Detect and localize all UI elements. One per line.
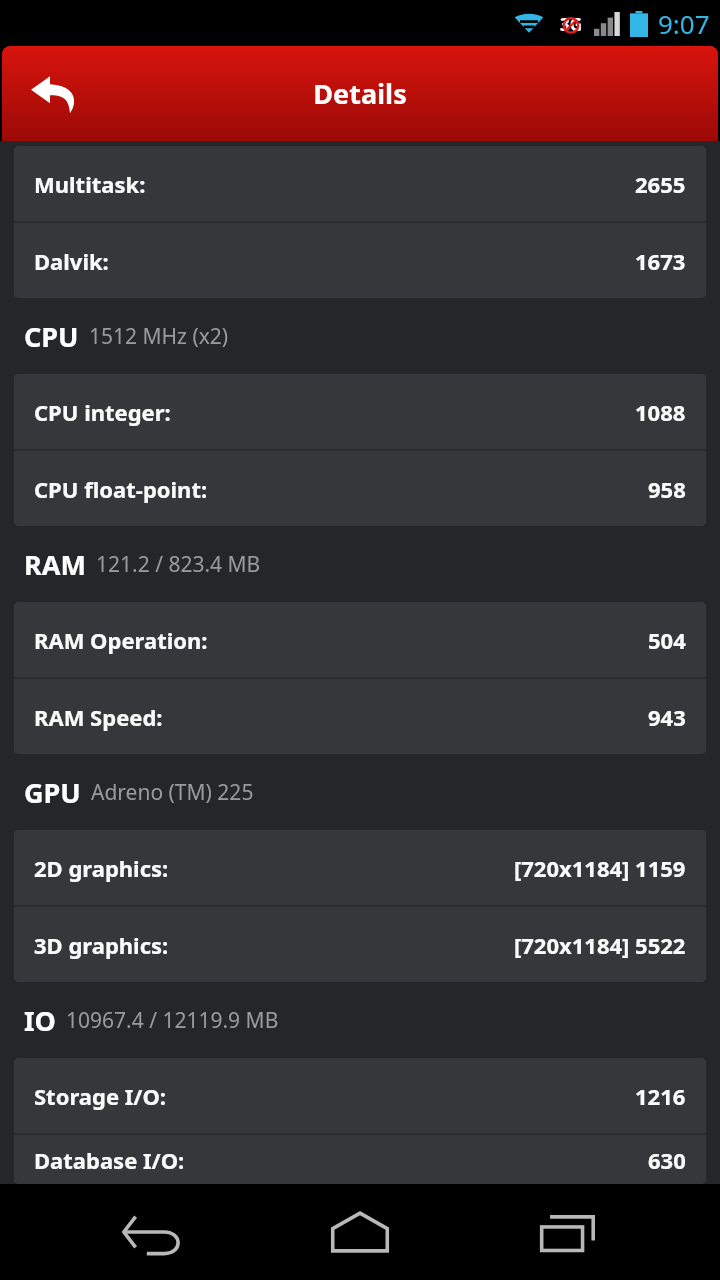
staticText: 1088 [635, 397, 686, 427]
button[interactable]: CPU float-point: [14, 451, 706, 526]
button[interactable]: Multitask: [14, 146, 706, 221]
staticText: [720x1184] 1159 [514, 853, 686, 883]
staticText: 630 [648, 1145, 686, 1175]
button[interactable]: Dalvik: [14, 223, 706, 298]
staticText: Dalvik: [34, 246, 109, 276]
staticText: GPU [24, 774, 81, 811]
button[interactable]: Database I/O: [14, 1135, 706, 1184]
staticText: 3G [560, 13, 583, 36]
button[interactable]: Recent apps [513, 1184, 623, 1280]
staticText: Database I/O: [34, 1145, 185, 1175]
staticText: 2D graphics: [34, 853, 169, 883]
button[interactable]: 3D graphics: [14, 907, 706, 982]
staticText: 2655 [635, 169, 686, 199]
staticText: 9:07 [658, 6, 710, 41]
staticText: CPU [24, 318, 79, 355]
staticText: RAM Speed: [34, 702, 163, 732]
staticText: 1216 [635, 1081, 686, 1111]
staticText: Storage I/O: [34, 1081, 167, 1111]
button[interactable]: Back [12, 51, 98, 137]
button[interactable]: Storage I/O: [14, 1058, 706, 1133]
staticText: 10967.4 / 12119.9 MB [66, 1006, 279, 1035]
staticText: 3D graphics: [34, 930, 169, 960]
staticText: CPU float-point: [34, 474, 208, 504]
button[interactable]: CPU integer: [14, 374, 706, 449]
staticText: IO [24, 1002, 56, 1039]
staticText: Details [313, 75, 407, 112]
staticText: [720x1184] 5522 [514, 930, 686, 960]
button[interactable]: RAM Operation: [14, 602, 706, 677]
staticText: Multitask: [34, 169, 146, 199]
staticText: RAM [24, 546, 86, 583]
staticText: 1673 [635, 246, 686, 276]
staticText: RAM Operation: [34, 625, 208, 655]
staticText: 504 [648, 625, 686, 655]
staticText: CPU integer: [34, 397, 171, 427]
staticText: 1512 MHz (x2) [89, 322, 229, 351]
staticText: Adreno (TM) 225 [91, 778, 254, 807]
button[interactable]: RAM Speed: [14, 679, 706, 754]
staticText: 958 [648, 474, 686, 504]
button[interactable]: Home [305, 1184, 415, 1280]
button[interactable]: 2D graphics: [14, 830, 706, 905]
button[interactable]: Back [98, 1184, 208, 1280]
staticText: 121.2 / 823.4 MB [96, 550, 261, 579]
staticText: 943 [648, 702, 686, 732]
